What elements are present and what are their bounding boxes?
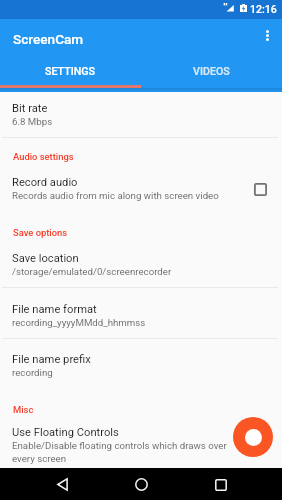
staticText: Record audio [12,176,78,189]
staticText: File name prefix [12,353,91,366]
button[interactable]: File name prefix [0,353,282,378]
button[interactable]: Record audio [0,176,282,201]
button[interactable]: Bit rate [0,102,282,127]
staticText: 12:16 [250,3,277,15]
button[interactable]: Recents [203,468,239,500]
button[interactable]: More options [252,21,282,55]
staticText: ScreenCam [13,31,84,47]
staticText: Misc [13,404,34,415]
staticText: Save location [12,252,79,265]
button[interactable]: SETTINGS [0,58,141,85]
staticText: 6.8 Mbps [12,116,53,127]
staticText: Bit rate [12,102,48,115]
button[interactable]: Record [233,417,273,457]
staticText: recording [12,367,53,378]
staticText: /storage/emulated/0/screenrecorder [12,266,172,277]
button[interactable]: Back [44,468,80,500]
staticText: recording_yyyyMMdd_hhmmss [12,317,146,328]
button[interactable]: VIDEOS [141,58,282,85]
staticText: Records audio from mic along with screen… [12,190,219,201]
staticText: every screen [12,453,67,464]
staticText: Save options [13,227,68,238]
button[interactable]: File name format [0,303,282,328]
button[interactable]: Save location [0,252,282,277]
staticText: File name format [12,303,97,316]
button[interactable]: Use Floating Controls [0,426,282,464]
staticText: VIDEOS [193,65,230,78]
staticText: Audio settings [13,151,74,162]
staticText: Enable/Disable floating controls which d… [12,440,227,451]
staticText: SETTINGS [45,65,96,78]
button[interactable]: Home [123,468,159,500]
staticText: Use Floating Controls [12,426,119,439]
